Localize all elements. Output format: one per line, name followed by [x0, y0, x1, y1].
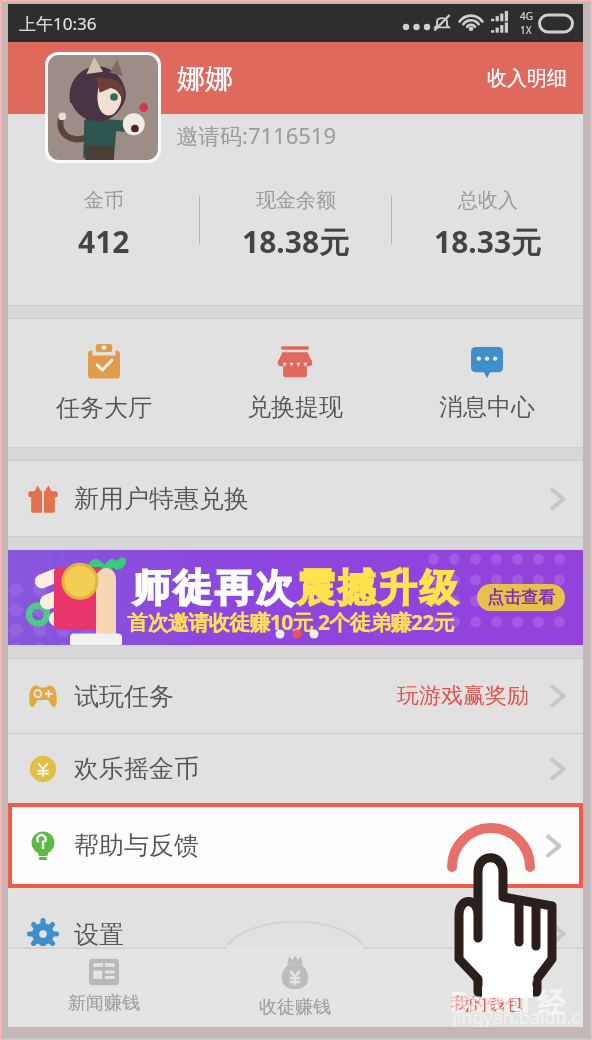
staticText: 18.33元 — [434, 221, 542, 262]
button[interactable]: 师徒再次 — [8, 550, 583, 645]
button[interactable]: 总收入 — [392, 188, 583, 262]
staticText: 玩游戏赢奖励 — [397, 682, 529, 710]
button[interactable]: 消息中心 — [391, 319, 583, 447]
staticText: 总收入 — [458, 188, 518, 213]
staticText: jingyan.baidu.com — [452, 1005, 583, 1027]
staticText: 帮助与反馈 — [74, 830, 199, 861]
button[interactable]: 我的钱包 — [391, 946, 583, 1026]
staticText: 新用户特惠兑换 — [74, 483, 249, 514]
button[interactable]: 兑换提现 — [199, 319, 391, 447]
staticText: 新闻赚钱 — [68, 992, 140, 1015]
staticText: 我的钱包 — [451, 993, 523, 1016]
button[interactable]: 点击查看 — [477, 584, 565, 611]
button[interactable]: 帮助与反馈 — [12, 807, 579, 884]
staticText: 4G — [520, 9, 533, 23]
staticText: 首次邀请收徒赚10元 2个徒弟赚22元 — [127, 608, 455, 637]
staticText: 师徒再次 — [131, 564, 295, 612]
staticText: 现金余额 — [256, 188, 336, 213]
staticText: 设置 — [74, 919, 124, 946]
staticText: 邀请码:7116519 — [176, 120, 336, 150]
staticText: 金币 — [84, 188, 124, 213]
staticText: 欢乐摇金币 — [74, 753, 199, 784]
staticText: 收徒赚钱 — [259, 996, 331, 1019]
staticText: 1X — [520, 23, 532, 37]
button[interactable]: 收徒赚钱 — [199, 946, 391, 1026]
button[interactable]: 欢乐摇金币 — [8, 734, 583, 803]
staticText: 娜娜 — [177, 61, 233, 96]
staticText: Baidu 经验 — [450, 983, 583, 1027]
button[interactable]: 任务大厅 — [8, 319, 199, 447]
button[interactable]: 试玩任务 — [8, 659, 583, 733]
staticText: 试玩任务 — [74, 681, 174, 712]
staticText: 上午10:36 — [19, 12, 97, 35]
staticText: 点击查看 — [487, 587, 555, 608]
button[interactable]: 新用户特惠兑换 — [8, 461, 583, 536]
staticText: 412 — [78, 221, 130, 262]
button[interactable]: 收入明细 — [471, 56, 583, 101]
button[interactable]: Profile avatar — [48, 55, 158, 160]
button[interactable]: 金币 — [8, 188, 199, 262]
staticText: 任务大厅 — [56, 393, 152, 423]
button[interactable]: 设置 — [8, 905, 583, 946]
staticText: 震撼升级 — [295, 564, 459, 612]
staticText: 18.38元 — [242, 221, 350, 262]
button[interactable]: 现金余额 — [200, 188, 391, 262]
staticText: 兑换提现 — [247, 392, 343, 422]
staticText: 收入明细 — [487, 66, 567, 91]
staticText: 消息中心 — [439, 392, 535, 422]
button[interactable]: 新闻赚钱 — [8, 946, 199, 1026]
